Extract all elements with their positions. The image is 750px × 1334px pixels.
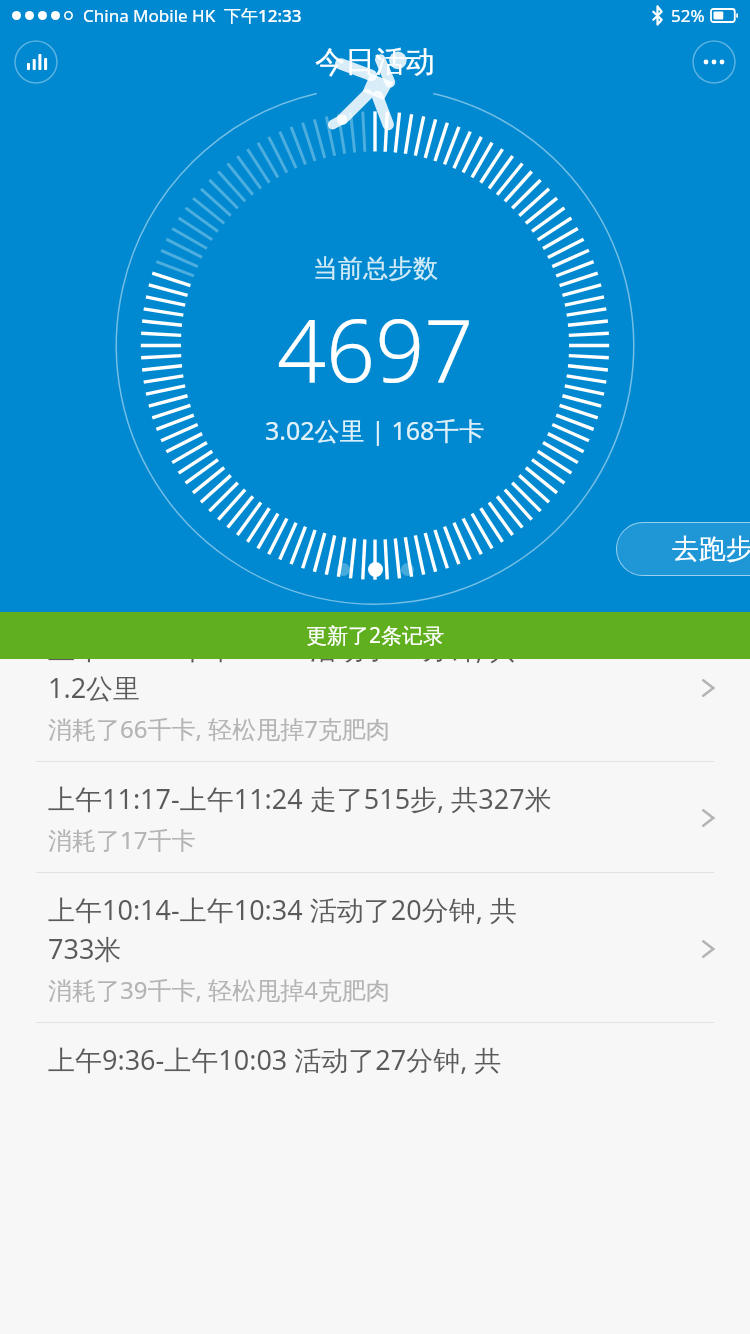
button[interactable]: 上午11:17-上午11:24 走了515步, 共327米 — [0, 762, 750, 872]
staticText: 消耗了17千卡 — [48, 823, 196, 856]
staticText: 今日活动 — [315, 43, 435, 81]
button[interactable]: 上午11:47-下午12:29 活动了42分钟, 共 1.2公里 — [0, 612, 750, 761]
staticText: 下午12:33 — [224, 4, 302, 27]
button[interactable]: More options — [692, 40, 736, 84]
staticText: 4697 — [277, 290, 474, 407]
button[interactable]: 上午9:36-上午10:03 活动了27分钟, 共 — [0, 1023, 750, 1094]
staticText: 去跑步 — [672, 532, 750, 566]
button[interactable]: 上午10:14-上午10:34 活动了20分钟, 共 733米 — [0, 873, 750, 1022]
staticText: 上午9:36-上午10:03 活动了27分钟, 共 — [48, 1041, 502, 1078]
staticText: 上午11:17-上午11:24 走了515步, 共327米 — [48, 780, 552, 817]
staticText: 当前总步数 — [313, 253, 438, 284]
button[interactable]: Statistics — [14, 40, 58, 84]
staticText: 52% — [671, 4, 705, 27]
staticText: 3.02公里 | 168千卡 — [265, 413, 485, 447]
staticText: 消耗了39千卡, 轻松甩掉4克肥肉 — [48, 973, 390, 1006]
button[interactable]: 去跑步 — [616, 522, 750, 576]
staticText: 上午11:47-下午12:29 活动了42分钟, 共 1.2公里 — [48, 630, 517, 706]
staticText: China Mobile HK — [83, 4, 216, 27]
staticText: 更新了2条记录 — [306, 621, 445, 650]
staticText: 上午10:14-上午10:34 活动了20分钟, 共 733米 — [48, 891, 517, 967]
staticText: 消耗了66千卡, 轻松甩掉7克肥肉 — [48, 712, 390, 745]
